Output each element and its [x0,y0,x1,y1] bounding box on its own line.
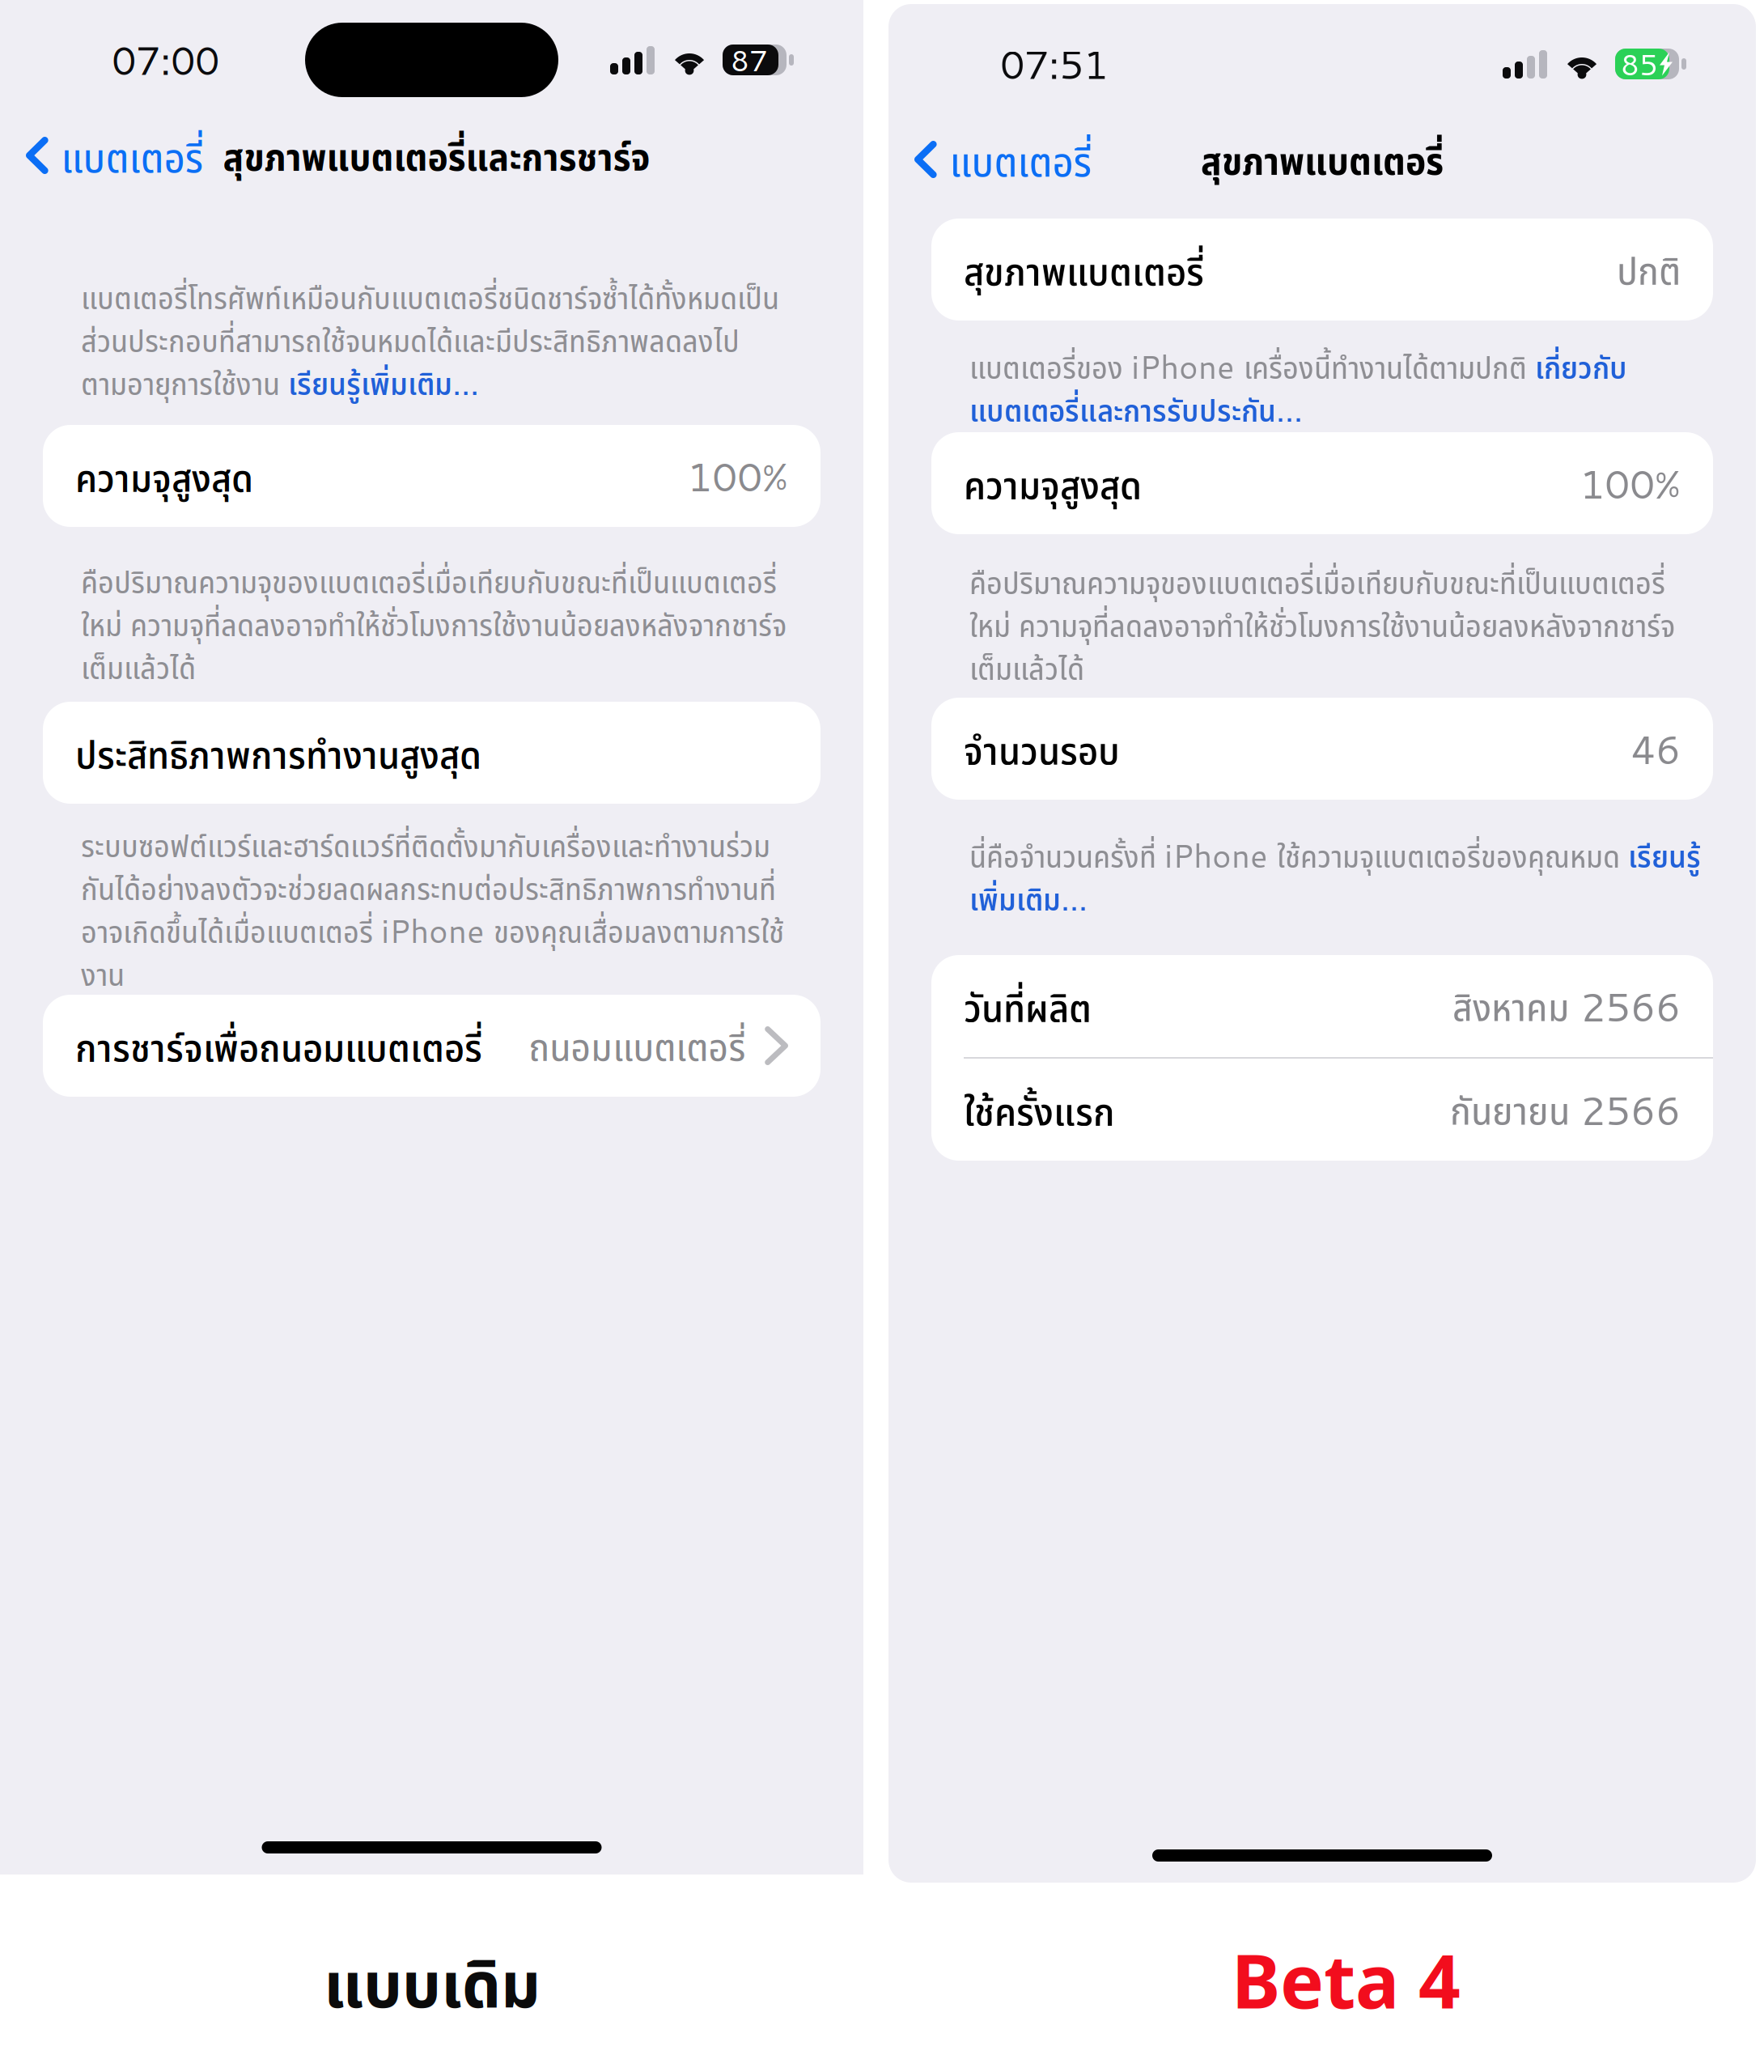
button[interactable]: วันที่ผลิต [931,955,1713,1057]
staticText: 100% [1580,455,1681,512]
staticText: เต็มแล้วได้ [969,645,1084,689]
staticText: แบตเตอรี่ [950,130,1092,189]
staticText: ใช้ครั้งแรก [964,1082,1115,1137]
button[interactable]: ความจุสูงสุด [43,425,821,527]
staticText: แบบเดิม [324,1936,541,2027]
staticText: 46 [1630,720,1681,777]
button[interactable]: การชาร์จเพื่อถนอมแบตเตอรี่ [43,995,821,1097]
staticText: 07:00 [112,32,219,87]
staticText: ความจุสูงสุด [75,449,253,503]
staticText: คือปริมาณความจุของแบตเตอรี่เมื่อเทียบกับ… [969,560,1665,604]
staticText: ความจุสูงสุด [964,456,1142,510]
staticText: Beta 4 [1232,1931,1461,2029]
staticText: คือปริมาณความจุของแบตเตอรี่เมื่อเทียบกับ… [81,559,777,603]
staticText: 100% [687,448,788,504]
staticText: เกี่ยวกับ [1535,344,1627,388]
staticText: ใหม่ ความจุที่ลดลงอาจทำให้ชั่วโมงการใช้ง… [969,602,1675,647]
button[interactable]: ประสิทธิภาพการทำงานสูงสุด [43,702,821,804]
staticText: การชาร์จเพื่อถนอมแบตเตอรี่ [75,1019,482,1073]
staticText: ส่วนประกอบที่สามารถใช้จนหมดได้และมีประสิ… [81,318,740,362]
staticText: ระบบซอฟต์แวร์และฮาร์ดแวร์ที่ติดตั้งมากับ… [81,823,770,867]
staticText: ปกติ [1617,242,1681,297]
staticText: ใหม่ ความจุที่ลดลงอาจทำให้ชั่วโมงการใช้ง… [81,602,787,646]
staticText: เต็มแล้วได้ [81,645,196,689]
button[interactable]: สุขภาพแบตเตอรี่ [931,219,1713,321]
staticText: แบตเตอรี่โทรศัพท์เหมือนกับแบตเตอรี่ชนิดช… [81,275,779,319]
button[interactable]: ใช้ครั้งแรก [931,1059,1713,1161]
staticText: สุขภาพแบตเตอรี่ [964,242,1204,297]
staticText: แบตเตอรี่และการรับประกัน... [969,386,1303,432]
staticText: ประสิทธิภาพการทำงานสูงสุด [75,726,481,780]
button[interactable]: จำนวนรอบ [931,698,1713,800]
staticText: กันได้อย่างลงตัวจะช่วยลดผลกระทบต่อประสิท… [81,865,776,910]
staticText: แบตเตอรี่ของ iPhone เครื่องนี้ทำงานได้ตา… [969,343,1535,389]
staticText: นี่คือจำนวนครั้งที่ iPhone ใช้ความจุแบตเ… [969,832,1628,878]
staticText: สุขภาพแบตเตอรี่และการชาร์จ [223,129,650,182]
staticText: วันที่ผลิต [964,979,1092,1033]
staticText: จำนวนรอบ [964,721,1120,776]
button[interactable]: ความจุสูงสุด [931,432,1713,534]
staticText: ถนอมแบตเตอรี่ [529,1019,745,1073]
staticText: เพิ่มเติม... [969,875,1088,921]
staticText: เรียนรู้เพิ่มเติม... [288,360,479,405]
staticText: งาน [81,951,125,995]
button[interactable]: แบตเตอรี่ [888,120,1092,199]
staticText: อาจเกิดขึ้นได้เมื่อแบตเตอรี่ iPhone ของค… [81,907,784,953]
staticText: แบตเตอรี่ [61,126,204,185]
staticText: เรียนรู้ [1628,833,1701,877]
staticText: 87 [731,39,768,81]
button[interactable]: แบตเตอรี่ [0,116,204,194]
staticText: ตามอายุการใช้งาน [81,360,288,405]
staticText: 07:51 [1000,36,1108,91]
staticText: สิงหาคม 2566 [1452,978,1681,1034]
staticText: สุขภาพแบตเตอรี่ [1201,133,1444,186]
staticText: 85 [1621,43,1658,85]
staticText: กันยายน 2566 [1450,1081,1681,1138]
